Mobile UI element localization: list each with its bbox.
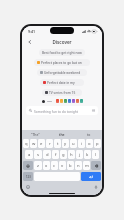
staticText: k <box>86 152 89 158</box>
staticText: l <box>95 152 97 158</box>
staticText: Best food to get right now <box>42 51 82 55</box>
staticText: d <box>46 152 49 158</box>
button[interactable]: s <box>34 150 42 159</box>
staticText: g <box>62 152 65 158</box>
staticText: TV series from 15 mins <box>49 91 79 95</box>
button[interactable]: Send <box>81 172 101 181</box>
button[interactable]: "The" <box>22 130 48 139</box>
staticText: o <box>88 141 91 147</box>
button[interactable]: n <box>75 161 82 170</box>
button[interactable]: to <box>75 130 102 139</box>
staticText: x <box>45 163 48 169</box>
staticText: p <box>96 141 99 147</box>
staticText: y <box>64 141 67 147</box>
button[interactable]: Category <box>72 99 75 103</box>
staticText: e <box>40 141 43 147</box>
button[interactable]: r <box>46 139 53 148</box>
button[interactable]: z <box>34 161 42 170</box>
button[interactable]: g <box>60 150 67 159</box>
button[interactable]: k <box>84 150 91 159</box>
button[interactable]: TV series from 15 mins <box>42 89 82 96</box>
button[interactable]: Category <box>64 99 67 103</box>
staticText: "The" <box>31 132 40 137</box>
button[interactable]: Category <box>60 99 63 103</box>
button[interactable]: e <box>38 139 45 148</box>
button[interactable]: Shift <box>23 161 33 170</box>
staticText: h <box>70 152 73 158</box>
button[interactable]: Best food to get right now <box>39 49 85 56</box>
staticText: Discover <box>52 39 72 45</box>
staticText: z <box>37 163 39 169</box>
staticText: Perfect date in my area <box>47 81 81 85</box>
button[interactable]: Something fun to do tonight <box>26 106 98 115</box>
button[interactable]: j <box>76 150 83 159</box>
staticText: s <box>37 152 40 158</box>
button[interactable]: w <box>30 139 37 148</box>
button[interactable]: f <box>52 150 59 159</box>
button[interactable]: q <box>23 139 29 148</box>
button[interactable]: Perfect date in my area <box>40 79 84 86</box>
button[interactable]: Perfect places to go but on Friday <box>34 59 90 66</box>
staticText: 9:41 <box>28 29 36 34</box>
button[interactable]: b <box>67 161 74 170</box>
button[interactable]: y <box>62 139 69 148</box>
button[interactable]: 123 <box>23 172 33 181</box>
staticText: 123 <box>26 175 31 179</box>
staticText: to <box>87 132 91 137</box>
staticText: Unforgettable weekend plan <box>44 71 84 75</box>
button[interactable]: v <box>59 161 66 170</box>
button[interactable]: a <box>25 150 33 159</box>
staticText: q <box>25 141 28 147</box>
button[interactable]: c <box>51 161 58 170</box>
button[interactable]: Category <box>76 99 79 103</box>
button[interactable]: d <box>43 150 51 159</box>
staticText: t <box>57 141 59 147</box>
button[interactable]: Emoji <box>26 185 30 189</box>
button[interactable]: i <box>78 139 85 148</box>
staticText: n <box>77 163 80 169</box>
button[interactable]: t <box>54 139 61 148</box>
staticText: u <box>72 141 75 147</box>
button[interactable]: l <box>92 150 99 159</box>
staticText: f <box>55 152 57 158</box>
button[interactable]: u <box>70 139 77 148</box>
staticText: j <box>79 152 81 158</box>
button[interactable]: Back <box>26 38 34 46</box>
staticText: r <box>49 141 51 147</box>
staticText: w <box>32 141 36 147</box>
button[interactable]: Category <box>56 99 59 103</box>
button[interactable]: Backspace <box>91 161 101 170</box>
button[interactable]: Dictation <box>94 185 98 189</box>
button[interactable]: o <box>86 139 93 148</box>
button[interactable]: m <box>83 161 90 170</box>
staticText: Something fun to do tonight <box>34 109 92 113</box>
staticText: Perfect places to go but on Friday <box>41 61 87 65</box>
button[interactable]: Category <box>80 99 83 103</box>
button[interactable]: p <box>94 139 101 148</box>
staticText: m <box>85 163 89 169</box>
staticText: the <box>59 132 65 137</box>
button[interactable]: Category <box>68 99 71 103</box>
button[interactable]: Unforgettable weekend plan <box>37 69 87 76</box>
button[interactable]: Options <box>42 100 45 103</box>
staticText: c <box>53 163 56 169</box>
staticText: b <box>69 163 72 169</box>
button[interactable]: Voice input <box>92 109 95 112</box>
staticText: v <box>61 163 64 169</box>
button[interactable]: x <box>43 161 50 170</box>
staticText: i <box>81 141 83 147</box>
staticText: a <box>28 152 31 158</box>
button[interactable]: h <box>68 150 75 159</box>
button[interactable]: the <box>48 130 75 139</box>
